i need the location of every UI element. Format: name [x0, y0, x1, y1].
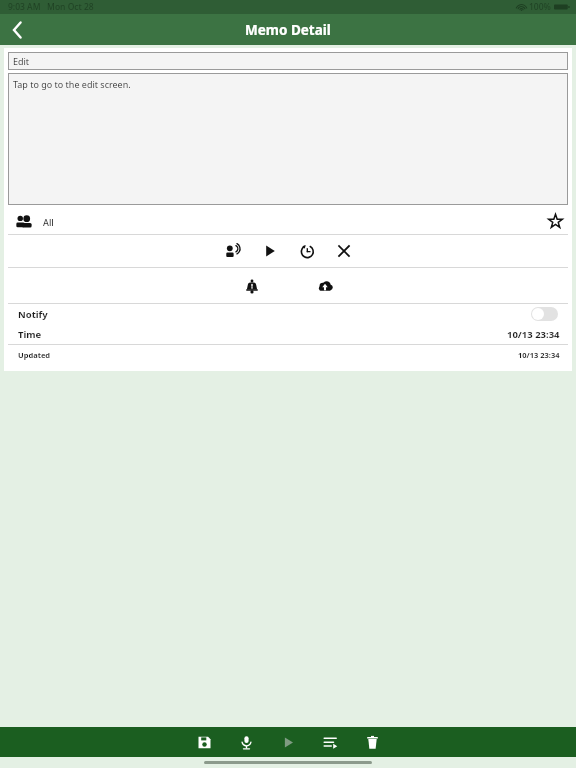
button[interactable]: All: [4, 209, 538, 234]
button[interactable]: Save: [191, 727, 217, 757]
button[interactable]: Time: [4, 324, 572, 344]
staticText: Edit: [13, 55, 30, 67]
button[interactable]: Delete: [359, 727, 385, 757]
button[interactable]: Upload: [311, 272, 339, 300]
staticText: 10/13 23:34: [507, 328, 560, 341]
button[interactable]: Edit: [8, 52, 568, 70]
button[interactable]: Queue: [317, 727, 343, 757]
staticText: Notify: [18, 308, 48, 321]
button[interactable]: Back: [0, 14, 34, 45]
staticText: Memo Detail: [245, 21, 331, 39]
button[interactable]: Tap to go to the edit screen.: [8, 73, 568, 205]
staticText: 10/13 23:34: [518, 350, 560, 360]
staticText: Time: [18, 328, 42, 341]
button[interactable]: Record: [233, 727, 259, 757]
button[interactable]: Play: [275, 727, 301, 757]
staticText: Tap to go to the edit screen.: [13, 78, 131, 90]
button[interactable]: Play: [256, 237, 284, 265]
staticText: 9:03 AM Mon Oct 28: [8, 1, 94, 13]
button[interactable]: History: [293, 237, 321, 265]
button[interactable]: Close: [330, 237, 358, 265]
staticText: Updated: [18, 350, 51, 360]
staticText: 100%: [529, 1, 551, 13]
staticText: All: [43, 216, 54, 228]
button[interactable]: Record voice: [219, 237, 247, 265]
button[interactable]: Notify: [4, 304, 572, 324]
button[interactable]: Notification: [238, 272, 266, 300]
button[interactable]: Favorite: [538, 209, 572, 234]
